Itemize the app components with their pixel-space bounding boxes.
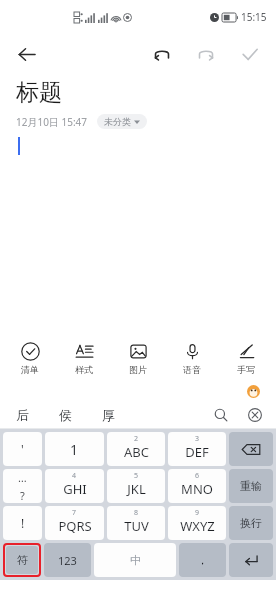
staticText: 语音 xyxy=(183,364,201,375)
button[interactable]: Back xyxy=(8,36,44,72)
staticText: WXYZ xyxy=(180,517,215,535)
button[interactable]: ， xyxy=(179,543,226,577)
button[interactable]: 图片 xyxy=(114,339,162,378)
button[interactable]: … xyxy=(3,469,42,503)
staticText: DEF xyxy=(185,443,209,461)
button[interactable]: Backspace xyxy=(229,432,273,466)
button[interactable]: 换行 xyxy=(229,506,273,540)
button[interactable]: 侯 xyxy=(55,405,76,425)
staticText: ， xyxy=(197,553,208,567)
button[interactable]: 7 xyxy=(45,506,104,540)
button[interactable]: 1 xyxy=(45,432,104,466)
staticText: ! xyxy=(21,515,25,531)
staticText: 15:15 xyxy=(241,10,267,24)
button[interactable]: 8 xyxy=(107,506,165,540)
staticText: PQRS xyxy=(58,517,92,535)
staticText: 侯 xyxy=(59,407,72,423)
staticText: 5 xyxy=(134,471,139,481)
staticText: GHI xyxy=(63,480,87,498)
button[interactable]: Undo xyxy=(146,38,178,70)
button[interactable]: 6 xyxy=(168,469,226,503)
button[interactable]: 未分类 xyxy=(97,114,147,129)
staticText: 手写 xyxy=(237,364,255,375)
button[interactable]: 4 xyxy=(45,469,104,503)
staticText: 标题 xyxy=(16,78,62,107)
button[interactable]: Done xyxy=(234,38,266,70)
staticText: 9 xyxy=(195,508,200,518)
button[interactable]: Redo xyxy=(190,38,222,70)
button[interactable]: 3 xyxy=(168,432,226,466)
staticText: 重输 xyxy=(240,479,262,493)
staticText: 123 xyxy=(58,553,77,568)
staticText: JKL xyxy=(127,480,146,498)
staticText: 清单 xyxy=(21,364,39,375)
staticText: … xyxy=(18,470,27,485)
staticText: 3 xyxy=(195,434,200,444)
staticText: 未分类 xyxy=(104,116,131,127)
button[interactable]: 语音 xyxy=(168,339,216,378)
button[interactable]: 2 xyxy=(107,432,165,466)
staticText: 7 xyxy=(72,508,77,518)
button[interactable]: 样式 xyxy=(60,339,108,378)
staticText: MNO xyxy=(181,480,213,498)
button[interactable]: 厚 xyxy=(98,405,119,425)
staticText: 8 xyxy=(134,508,139,518)
button[interactable]: Close keyboard panel xyxy=(244,404,266,426)
staticText: ' xyxy=(21,441,24,457)
button[interactable]: ' xyxy=(3,432,42,466)
staticText: 换行 xyxy=(240,516,262,530)
staticText: 样式 xyxy=(75,364,93,375)
button[interactable]: Enter xyxy=(229,543,273,577)
button[interactable]: 重输 xyxy=(229,469,273,503)
staticText: ABC xyxy=(124,443,149,461)
button[interactable]: 清单 xyxy=(6,339,54,378)
staticText: 1 xyxy=(70,440,79,459)
staticText: 6 xyxy=(195,471,200,481)
staticText: 2 xyxy=(134,434,139,444)
button[interactable]: 手写 xyxy=(222,339,270,378)
button[interactable]: 后 xyxy=(12,405,33,425)
button[interactable]: Search xyxy=(210,404,232,426)
button[interactable]: 9 xyxy=(168,506,226,540)
staticText: 后 xyxy=(16,407,29,423)
staticText: 4 xyxy=(72,471,77,481)
staticText: 中 xyxy=(130,553,141,567)
staticText: TUV xyxy=(124,517,149,535)
button[interactable]: 123 xyxy=(44,543,91,577)
staticText: 12月10日 15:47 xyxy=(16,115,88,129)
staticText: ? xyxy=(20,488,25,503)
button[interactable]: Space xyxy=(94,543,176,577)
staticText: 符 xyxy=(17,553,28,567)
button[interactable]: 5 xyxy=(107,469,165,503)
staticText: 厚 xyxy=(102,407,115,423)
button[interactable]: ! xyxy=(3,506,42,540)
staticText: 图片 xyxy=(129,364,147,375)
button[interactable]: 符 xyxy=(6,546,38,574)
